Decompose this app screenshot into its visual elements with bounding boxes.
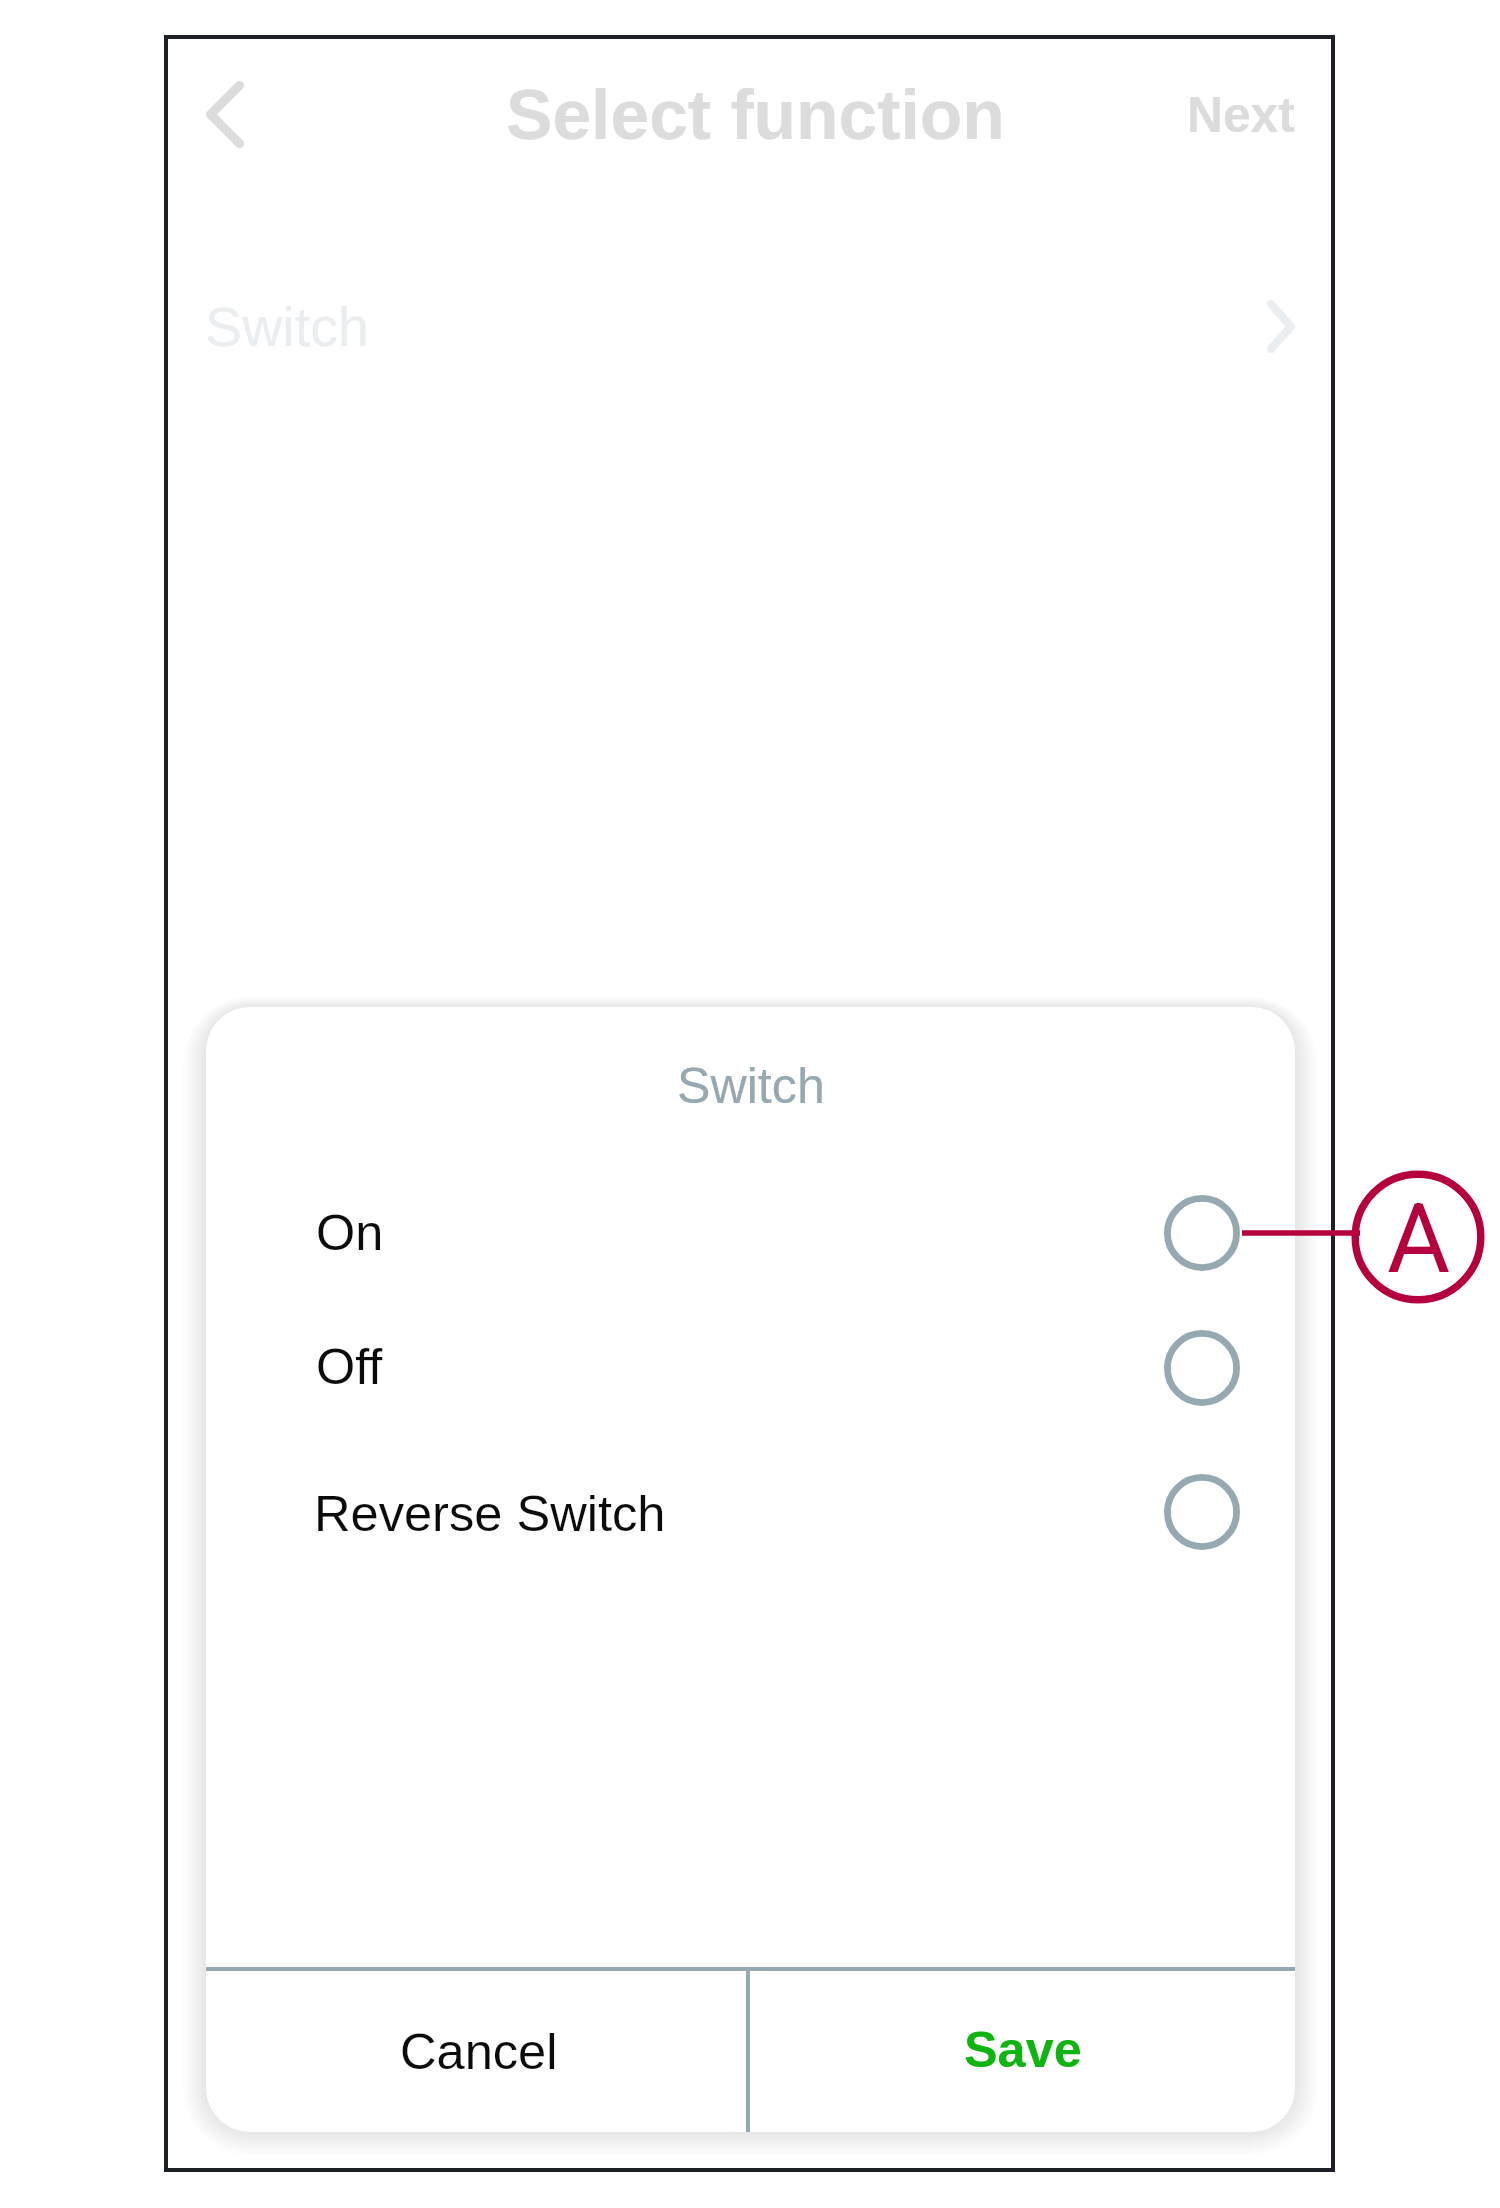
- button[interactable]: Reverse Switch: [206, 1460, 1295, 1564]
- staticText: A: [1387, 1182, 1500, 1295]
- button[interactable]: Back: [178, 55, 270, 175]
- staticText: Next: [1187, 87, 1327, 143]
- button[interactable]: On: [206, 1181, 1295, 1285]
- staticText: Off: [316, 1338, 921, 1394]
- button[interactable]: Off: [206, 1316, 1295, 1420]
- staticText: Select function: [506, 76, 1341, 154]
- staticText: Reverse Switch: [314, 1485, 921, 1542]
- button[interactable]: Next: [1172, 76, 1312, 156]
- staticText: Save: [964, 2021, 1295, 2077]
- staticText: Switch: [677, 1058, 1279, 1114]
- staticText: On: [316, 1204, 921, 1260]
- staticText: Cancel: [400, 2023, 940, 2080]
- button[interactable]: Save: [750, 1971, 1295, 2132]
- button[interactable]: Cancel: [206, 1971, 746, 2132]
- staticText: Switch: [205, 296, 873, 358]
